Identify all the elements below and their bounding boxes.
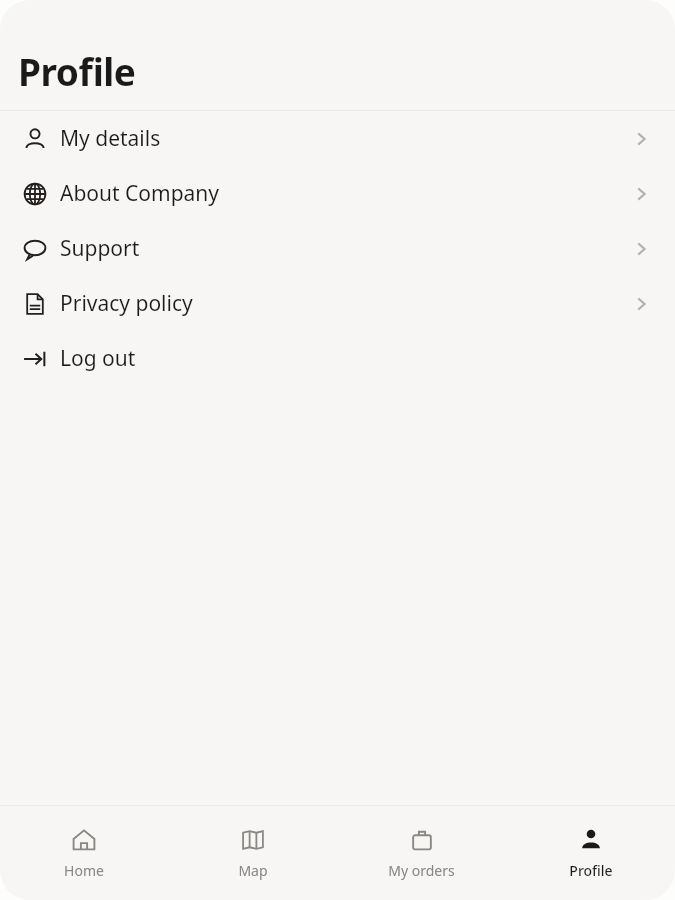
- staticText: My details: [60, 124, 161, 153]
- staticText: Profile: [569, 861, 613, 880]
- button[interactable]: Map: [168, 819, 337, 888]
- button[interactable]: My orders: [337, 819, 506, 888]
- button[interactable]: Privacy policy: [0, 276, 675, 331]
- button[interactable]: Home: [0, 819, 168, 888]
- other: Map: [240, 827, 266, 853]
- button[interactable]: Log out: [0, 331, 675, 386]
- button[interactable]: My details: [0, 111, 675, 166]
- staticText: Privacy policy: [60, 289, 193, 318]
- staticText: Map: [238, 861, 268, 880]
- staticText: Home: [64, 861, 104, 880]
- staticText: Profile: [18, 46, 136, 96]
- other: My orders: [409, 827, 435, 853]
- other: Profile: [578, 827, 604, 853]
- other: Home: [71, 827, 97, 853]
- button[interactable]: Profile: [506, 819, 675, 888]
- staticText: About Company: [60, 179, 220, 208]
- staticText: Log out: [60, 344, 136, 373]
- staticText: Support: [60, 234, 140, 263]
- staticText: My orders: [388, 861, 455, 880]
- button[interactable]: Support: [0, 221, 675, 276]
- button[interactable]: About Company: [0, 166, 675, 221]
